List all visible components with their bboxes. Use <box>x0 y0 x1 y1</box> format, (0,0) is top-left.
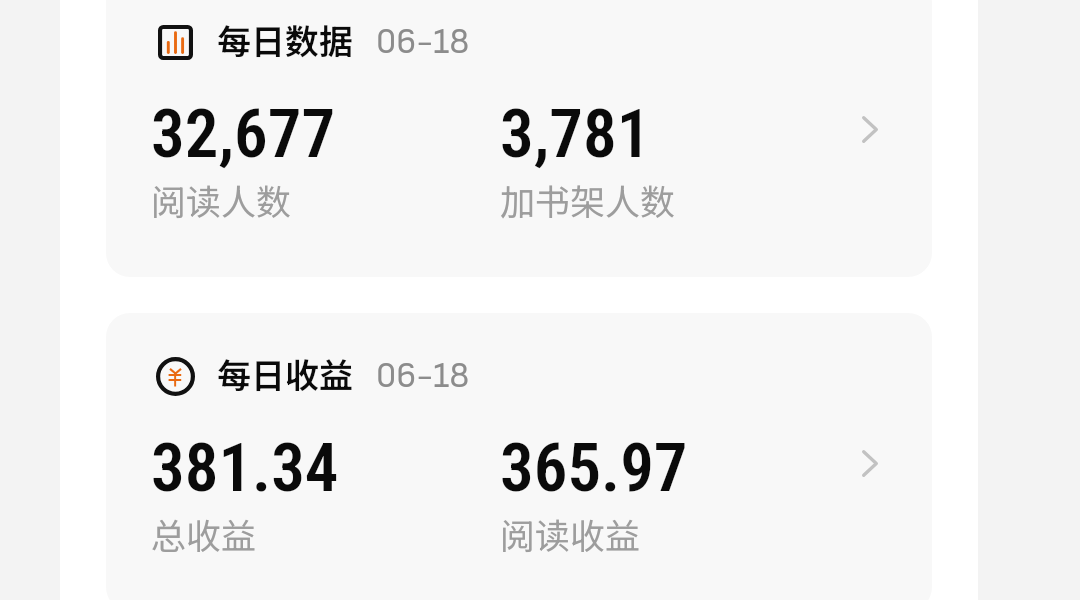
button[interactable]: 每日收益 <box>106 313 932 600</box>
staticText: 06-18 <box>376 21 470 63</box>
staticText: 381.34 <box>151 429 339 508</box>
staticText: 阅读收益 <box>500 508 641 559</box>
staticText: 阅读人数 <box>151 174 292 225</box>
button[interactable]: 查看详情 <box>846 439 894 487</box>
staticText: 每日数据 <box>217 15 353 64</box>
staticText: 32,677 <box>151 95 336 174</box>
button[interactable]: 查看详情 <box>846 105 894 153</box>
staticText: 每日收益 <box>217 349 353 398</box>
staticText: 365.97 <box>500 429 688 508</box>
staticText: 加书架人数 <box>500 174 676 225</box>
staticText: 总收益 <box>151 508 257 559</box>
other: 每日收益 <box>156 357 195 396</box>
button[interactable]: 每日数据 <box>106 0 932 277</box>
other: 每日数据 <box>158 25 193 60</box>
staticText: 06-18 <box>376 355 470 397</box>
staticText: 3,781 <box>500 95 651 174</box>
